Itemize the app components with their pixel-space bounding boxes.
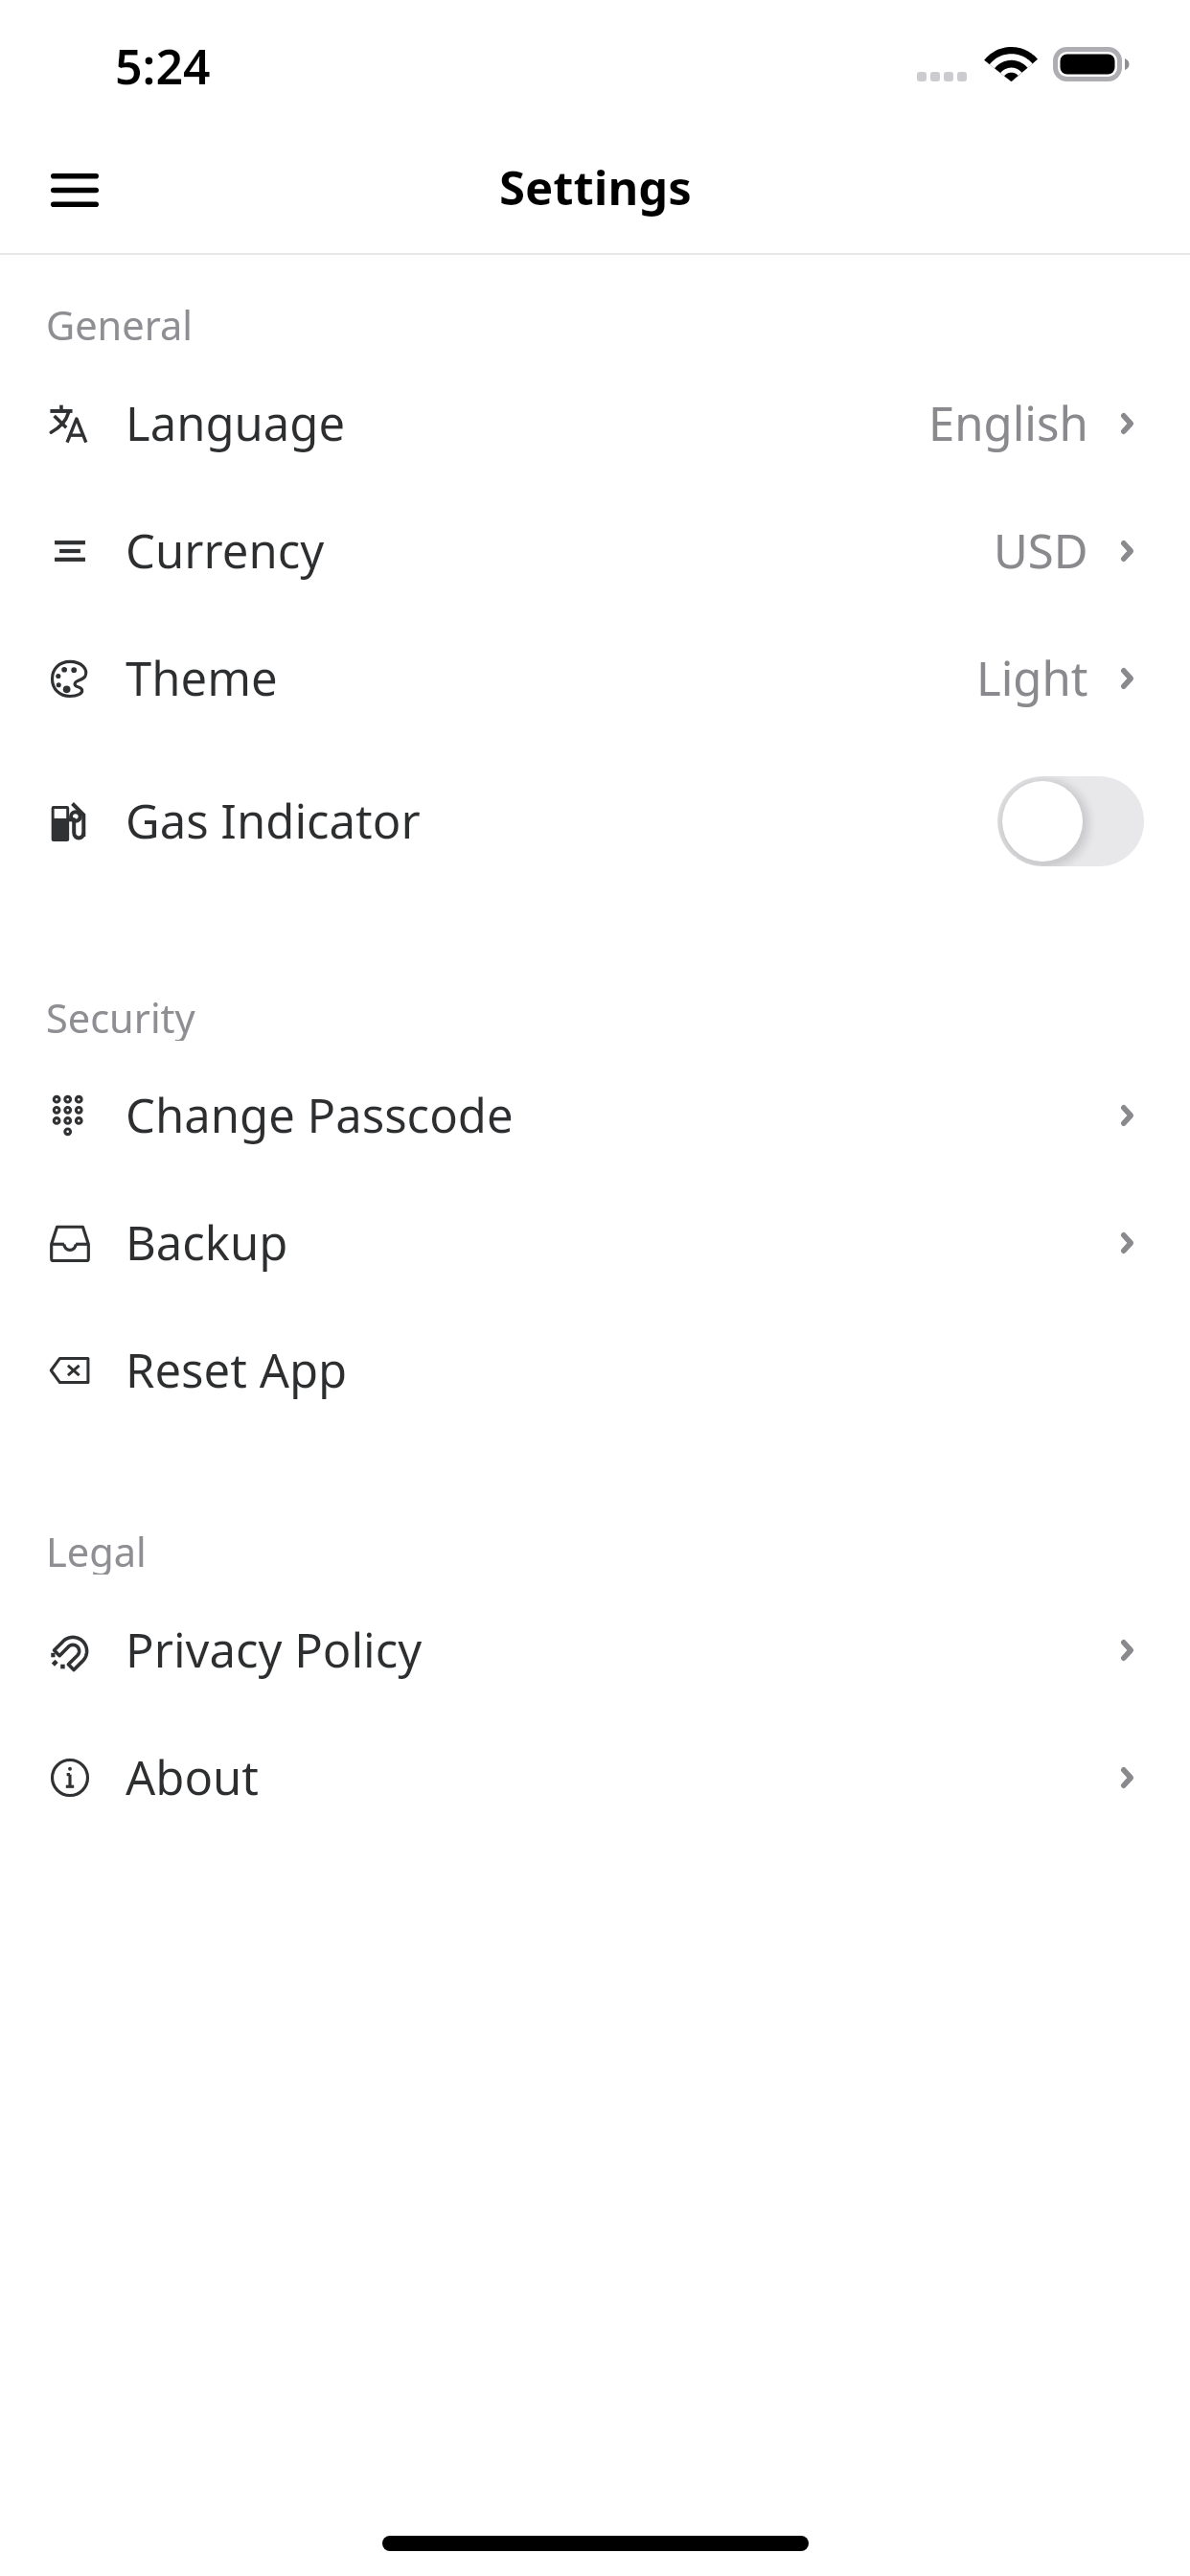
button[interactable]: Reset App — [0, 1306, 1190, 1434]
staticText: Light — [976, 646, 1088, 710]
staticText: Security — [46, 991, 195, 1041]
staticText: USD — [994, 518, 1088, 583]
button[interactable]: Gas Indicator — [0, 749, 1190, 892]
staticText: Backup — [126, 1210, 288, 1275]
button[interactable]: About — [0, 1713, 1190, 1841]
staticText: English — [928, 391, 1088, 455]
button[interactable]: Gas Indicator toggle — [997, 776, 1144, 866]
staticText: Theme — [126, 646, 278, 710]
staticText: Language — [126, 391, 346, 455]
staticText: 5:24 — [115, 34, 211, 99]
button[interactable]: Theme — [0, 614, 1190, 742]
staticText: Currency — [126, 518, 325, 583]
staticText: Reset App — [126, 1338, 348, 1402]
staticText: General — [46, 298, 193, 348]
staticText: Legal — [46, 1525, 147, 1575]
button[interactable]: Backup — [0, 1179, 1190, 1306]
button[interactable]: Menu — [19, 137, 130, 242]
staticText: Settings — [499, 155, 692, 219]
staticText: Change Passcode — [126, 1083, 514, 1147]
staticText: About — [126, 1745, 260, 1809]
staticText: Gas Indicator — [126, 789, 421, 853]
staticText: Privacy Policy — [126, 1618, 423, 1682]
button[interactable]: Currency — [0, 487, 1190, 614]
button[interactable]: Change Passcode — [0, 1051, 1190, 1179]
button[interactable]: Language — [0, 359, 1190, 487]
button[interactable]: Privacy Policy — [0, 1586, 1190, 1713]
